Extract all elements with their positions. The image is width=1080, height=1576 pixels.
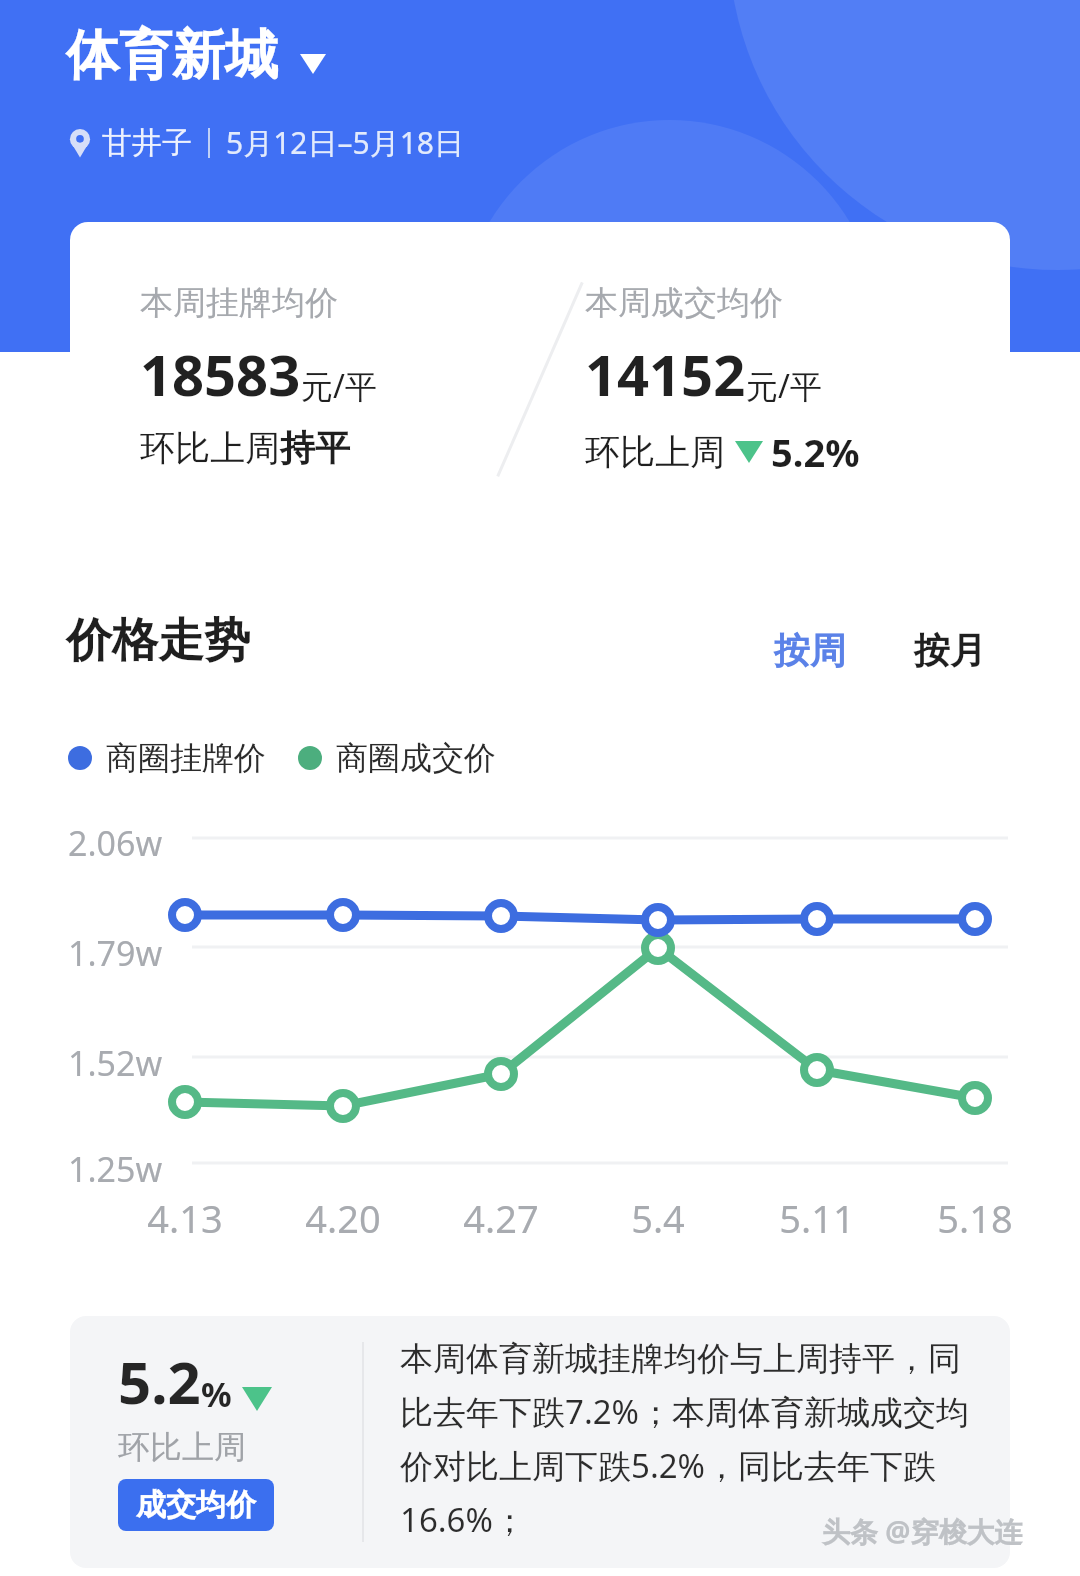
staticText: 1.79w [68, 930, 163, 976]
staticText: 2.06w [68, 820, 163, 866]
staticText: 环比上周持平 [140, 426, 350, 470]
button[interactable]: 体育新城 [66, 22, 334, 89]
button[interactable]: 按周 [770, 624, 850, 677]
staticText: 本周成交均价 [585, 282, 783, 324]
staticText: 5.18 [915, 1192, 1035, 1244]
staticText: 体育新城 [66, 22, 278, 89]
staticText: 5.11 [757, 1192, 877, 1244]
staticText: 商圈挂牌价 [106, 738, 266, 778]
staticText: 按月 [914, 628, 986, 673]
staticText: 4.20 [283, 1192, 403, 1244]
staticText: 4.27 [441, 1192, 561, 1244]
staticText: 5.2% [771, 426, 860, 478]
staticText: 5.2 [118, 1342, 201, 1421]
staticText: 按周 [774, 628, 846, 673]
staticText: 5.4 [598, 1192, 718, 1244]
staticText: 成交均价 [136, 1486, 256, 1524]
staticText: 1.25w [68, 1146, 163, 1192]
staticText: 5月12日–5月18日 [226, 122, 464, 163]
staticText: 价格走势 [66, 612, 250, 670]
staticText: 环比上周 [118, 1427, 246, 1467]
staticText: 元/平 [301, 364, 377, 408]
staticText: 1.52w [68, 1040, 163, 1086]
staticText: 4.13 [125, 1192, 245, 1244]
button[interactable]: 5.2 [70, 1316, 1010, 1568]
staticText: 14152 [585, 336, 746, 412]
staticText: 元/平 [746, 364, 822, 408]
button[interactable]: 按月 [910, 624, 990, 677]
staticText: 本周挂牌均价 [140, 282, 338, 324]
button[interactable]: 成交均价 [118, 1479, 274, 1531]
staticText: 甘井子 [102, 124, 192, 162]
staticText: 头条 @穿梭大连 [822, 1512, 1023, 1550]
staticText: 18583 [140, 336, 301, 412]
staticText: 商圈成交价 [336, 738, 496, 778]
staticText: 环比上周 [585, 430, 725, 474]
staticText: 本周体育新城挂牌均价与上周持平，同比去年下跌7.2%；本周体育新城成交均价对比上… [400, 1338, 970, 1542]
staticText: % [201, 1371, 232, 1417]
button[interactable]: 本周挂牌均价 [70, 222, 1010, 540]
